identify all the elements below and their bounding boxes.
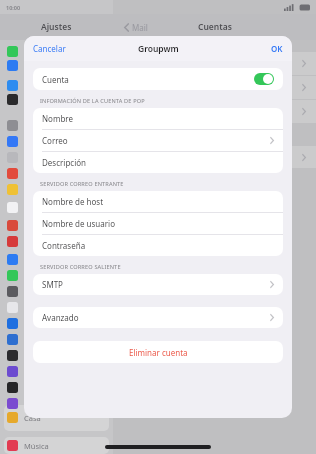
staticText: INFORMACIÓN DE LA CUENTA DE POP [40,97,145,105]
staticText: Eliminar cuenta [129,347,188,358]
staticText: Avanzado [42,312,79,323]
button[interactable]: Mail [113,18,154,37]
staticText: Descripción [42,157,86,168]
button[interactable]: Casa [7,412,41,423]
button[interactable]: Cuenta activada [254,73,274,85]
button[interactable]: Cuenta [33,68,283,90]
button[interactable]: Avanzado [33,307,283,328]
staticText: Cuenta [42,74,69,85]
staticText: Cancelar [33,43,66,54]
staticText: SERVIDOR CORREO SALIENTE [40,263,121,271]
staticText: Nombre [42,113,73,124]
button[interactable]: Nombre [33,108,283,129]
button[interactable]: Contraseña [33,235,283,256]
button[interactable]: Correo [33,130,283,151]
button[interactable]: Música [7,440,49,451]
staticText: Ajustes [41,21,72,33]
button[interactable]: Nombre de usuario [33,213,283,234]
staticText: Cuentas [198,21,232,33]
staticText: Contraseña [42,240,86,251]
staticText: Nombre de host [42,196,104,207]
button[interactable]: Cancelar [24,37,75,60]
button[interactable]: SMTP [33,274,283,295]
staticText: SERVIDOR CORREO ENTRANTE [40,180,124,188]
staticText: 10:00 [6,4,21,11]
staticText: SMTP [42,279,63,290]
button[interactable]: Eliminar cuenta [33,341,283,363]
staticText: Casa [24,413,41,423]
staticText: Música [24,441,49,451]
staticText: Nombre de usuario [42,218,115,229]
staticText: Correo [42,135,68,146]
staticText: Mail [132,22,148,33]
button[interactable]: OK [262,37,292,60]
staticText: Groupwm [138,43,179,55]
button[interactable]: Descripción [33,152,283,173]
button[interactable]: Nombre de host [33,191,283,212]
staticText: OK [271,43,283,54]
